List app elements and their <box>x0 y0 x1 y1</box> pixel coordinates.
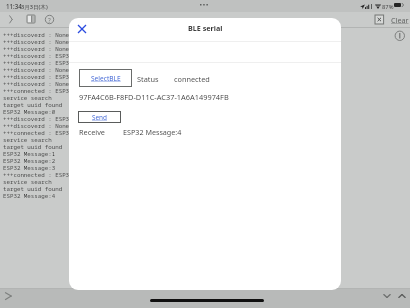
staticText: +++connected : ESP32 <box>3 171 73 178</box>
staticText: +++discoverd : None <box>3 38 70 45</box>
button[interactable]: Help <box>45 15 54 24</box>
staticText: +++discoverd : ESP32 <box>3 73 73 80</box>
staticText: +++discoverd : ESP32 <box>3 115 73 122</box>
button[interactable]: Info <box>394 30 406 42</box>
staticText: Clear <box>391 15 409 25</box>
staticText: BLE serial <box>188 23 223 33</box>
staticText: ESP32 Message:4 <box>123 127 182 137</box>
button[interactable]: Scroll down <box>382 291 392 301</box>
staticText: +++discoverd : None <box>3 80 70 87</box>
staticText: 3月3日(木) <box>21 3 48 11</box>
staticText: target uuid found <box>3 185 63 192</box>
button[interactable]: Close dialog <box>77 24 87 34</box>
staticText: target uuid found <box>3 101 63 108</box>
staticText: +++discoverd : ESP32 <box>3 59 73 66</box>
staticText: 97FA4C6B-F8FD-D11C-AC37-1A6A149974FB <box>79 92 229 102</box>
button[interactable]: Next <box>4 290 14 303</box>
staticText: ESP32 Message:4 <box>3 192 56 199</box>
staticText: connected <box>174 74 210 84</box>
staticText: target uuid found <box>3 143 63 150</box>
staticText: +++connected : ESP32 <box>3 87 73 94</box>
button[interactable]: SelectBLE <box>79 69 132 87</box>
staticText: 11:34 <box>6 2 22 10</box>
staticText: +++discoverd : None <box>3 122 70 129</box>
button[interactable]: Split screen <box>27 15 35 23</box>
button[interactable]: Close console <box>375 15 384 24</box>
staticText: 87% <box>382 3 394 11</box>
staticText: ESP32 Message:3 <box>3 164 56 171</box>
staticText: ? <box>48 16 51 24</box>
staticText: +++connected : ESP32 <box>3 129 73 136</box>
staticText: Receive <box>79 127 105 137</box>
staticText: ESP32 Message:2 <box>3 157 56 164</box>
staticText: ESP32 Message:1 <box>3 150 56 157</box>
staticText: Status <box>137 74 159 84</box>
staticText: ESP32 Message:0 <box>3 108 56 115</box>
staticText: +++discoverd : None <box>3 66 70 73</box>
button[interactable]: Send <box>78 111 121 123</box>
staticText: service search <box>3 178 52 185</box>
button[interactable]: Back <box>6 14 17 26</box>
staticText: service search <box>3 136 52 143</box>
staticText: +++discoverd : None <box>3 31 70 38</box>
button[interactable]: Clear <box>391 15 409 25</box>
staticText: SelectBLE <box>91 74 121 83</box>
staticText: +++discoverd : None <box>3 45 70 52</box>
staticText: Send <box>92 113 107 122</box>
staticText: service search <box>3 94 52 101</box>
button[interactable]: Scroll up <box>397 291 407 301</box>
staticText: +++discoverd : ESP32 <box>3 52 73 59</box>
